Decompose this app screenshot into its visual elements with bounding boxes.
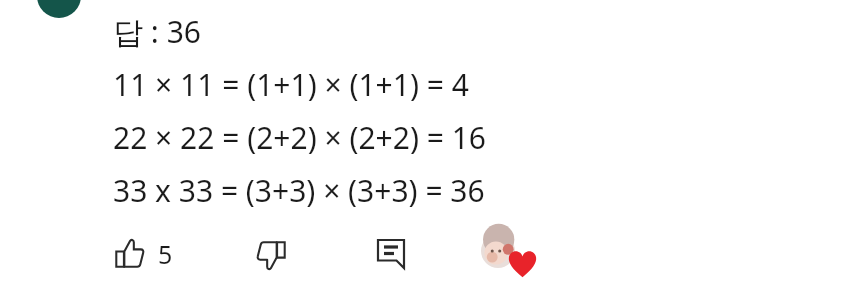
staticText: 5 bbox=[158, 237, 173, 271]
button[interactable]: Profile picture bbox=[37, 0, 81, 18]
staticText: 11 × 11 = (1+1) × (1+1) = 4 bbox=[113, 64, 469, 105]
staticText: 22 × 22 = (2+2) × (2+2) = 16 bbox=[113, 117, 486, 158]
button[interactable]: Like bbox=[113, 232, 177, 276]
button[interactable]: Reply bbox=[369, 232, 413, 276]
staticText: 33 x 33 = (3+3) × (3+3) = 36 bbox=[113, 170, 485, 211]
button[interactable]: Hearted by creator bbox=[481, 232, 541, 276]
staticText: 답 : 36 bbox=[113, 11, 201, 52]
other: Like bbox=[113, 238, 146, 271]
button[interactable]: Dislike bbox=[249, 232, 293, 276]
